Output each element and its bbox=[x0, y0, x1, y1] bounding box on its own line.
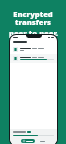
other: File bbox=[13, 56, 18, 61]
button[interactable]: File bbox=[10, 54, 57, 63]
staticText: peer to peer. bbox=[9, 28, 58, 38]
staticText: Encrypted transfers bbox=[2, 9, 64, 28]
button[interactable] bbox=[38, 140, 47, 143]
button[interactable]: File bbox=[10, 45, 57, 54]
button[interactable] bbox=[21, 139, 35, 143]
other: File bbox=[13, 47, 18, 52]
